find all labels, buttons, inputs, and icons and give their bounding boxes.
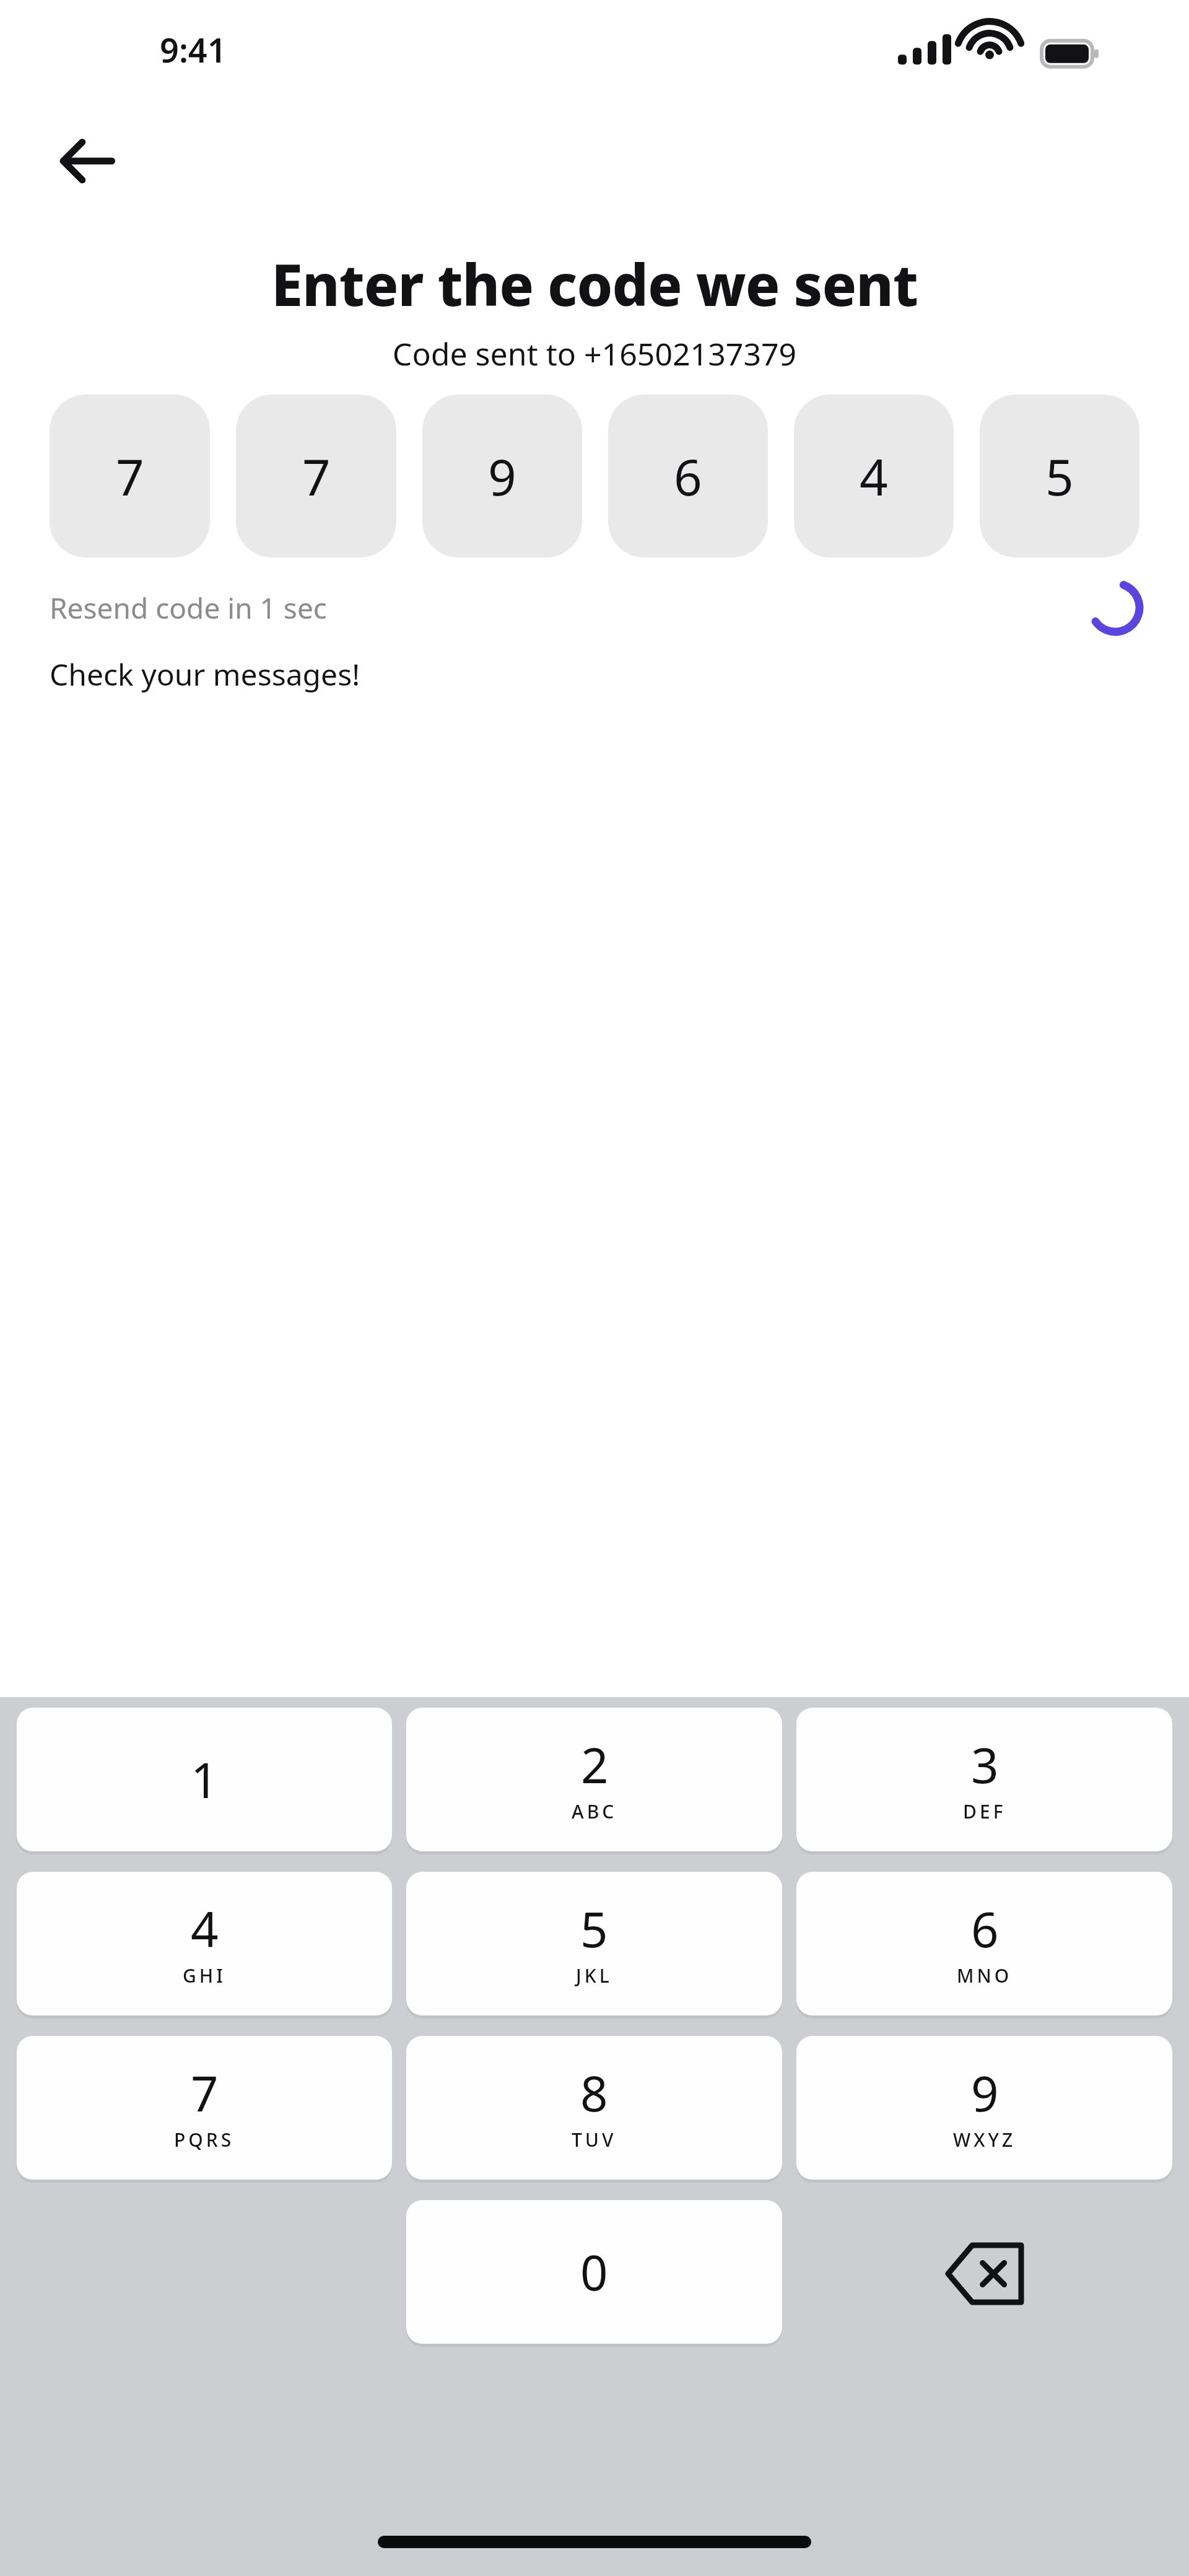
button[interactable]: 4	[794, 395, 954, 557]
staticText: WXYZ	[953, 2127, 1016, 2152]
staticText: 4	[860, 442, 888, 510]
button[interactable]: 5	[406, 1872, 782, 2015]
button[interactable]: 7	[236, 395, 396, 557]
button[interactable]: 0	[406, 2200, 782, 2344]
button[interactable]: 6	[608, 395, 768, 557]
button[interactable]: 7	[50, 395, 210, 557]
staticText: ABC	[572, 1799, 617, 1824]
button[interactable]: Backspace	[796, 2200, 1172, 2347]
staticText: GHI	[183, 1963, 226, 1988]
button[interactable]: Back	[37, 111, 136, 211]
staticText: 2	[581, 1732, 609, 1797]
staticText: MNO	[957, 1963, 1013, 1988]
button[interactable]: 4	[17, 1872, 392, 2015]
staticText: 0	[580, 2239, 608, 2305]
staticText: DEF	[963, 1799, 1006, 1824]
staticText: PQRS	[174, 2127, 235, 2152]
staticText: 7	[191, 2060, 219, 2126]
button[interactable]: 6	[796, 1872, 1172, 2015]
staticText: Check your messages!	[50, 654, 360, 694]
staticText: 7	[116, 442, 144, 510]
staticText: JKL	[576, 1963, 612, 1988]
staticText: 5	[1045, 442, 1074, 510]
staticText: 7	[302, 442, 331, 510]
staticText: 9	[488, 442, 516, 510]
staticText: 3	[971, 1732, 999, 1797]
staticText: 6	[674, 442, 702, 510]
staticText: 6	[971, 1896, 999, 1962]
button[interactable]: Resend code in 1 sec	[50, 588, 327, 627]
button[interactable]: 2	[406, 1708, 782, 1851]
staticText: 1	[191, 1747, 219, 1812]
staticText: 9:41	[160, 27, 227, 72]
button[interactable]: 7	[17, 2036, 392, 2180]
button[interactable]: 3	[796, 1708, 1172, 1851]
staticText: 9	[971, 2060, 999, 2126]
staticText: 4	[191, 1896, 219, 1962]
button[interactable]: 9	[796, 2036, 1172, 2180]
staticText: Enter the code we sent	[25, 245, 1164, 323]
staticText: TUV	[572, 2127, 617, 2152]
button[interactable]: 8	[406, 2036, 782, 2180]
staticText: 8	[580, 2060, 608, 2126]
button[interactable]: 9	[422, 395, 582, 557]
staticText: Code sent to +16502137379	[25, 333, 1164, 375]
staticText: 5	[580, 1896, 608, 1962]
button[interactable]: 5	[980, 395, 1139, 557]
button[interactable]: 1	[17, 1708, 392, 1851]
